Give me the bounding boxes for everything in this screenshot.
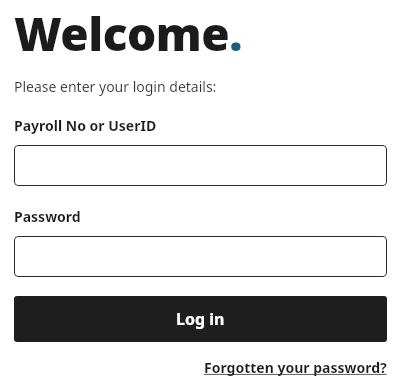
button[interactable]	[14, 236, 387, 277]
staticText: Password	[14, 207, 81, 226]
button[interactable]: Forgotten your password?	[204, 358, 387, 377]
staticText: Payroll No or UserID	[14, 116, 157, 135]
staticText: Welcome.	[14, 2, 242, 65]
button[interactable]: Log in	[14, 296, 387, 342]
staticText: Forgotten your password?	[204, 358, 387, 377]
staticText: Please enter your login details:	[14, 77, 217, 96]
button[interactable]	[14, 145, 387, 186]
staticText: Log in	[176, 308, 225, 330]
